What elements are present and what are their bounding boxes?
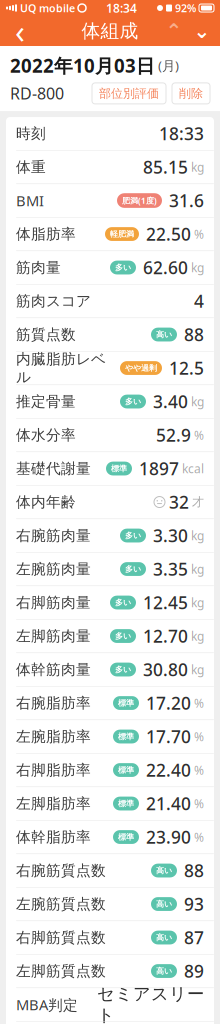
staticText: 多い — [115, 631, 131, 641]
staticText: 89 — [184, 959, 204, 982]
staticText: 高い — [156, 966, 172, 976]
staticText: 右腕筋質点数 — [16, 861, 106, 879]
staticText: 左脚筋質点数 — [16, 962, 106, 980]
button[interactable]: 前の記録 — [160, 16, 188, 46]
staticText: 内臓脂肪レベル — [16, 350, 106, 386]
staticText: 高い — [156, 330, 172, 339]
staticText: % — [194, 226, 204, 242]
staticText: 85.15 — [143, 155, 188, 178]
staticText: 基礎代謝量 — [16, 459, 91, 477]
staticText: 30.80 — [143, 658, 188, 681]
staticText: 多い — [115, 263, 131, 272]
staticText: 12.5 — [169, 356, 204, 379]
staticText: 右脚筋肉量 — [16, 593, 91, 611]
staticText: 62.60 — [143, 256, 188, 279]
staticText: 右脚筋質点数 — [16, 928, 106, 946]
staticText: 軽肥満 — [110, 229, 134, 239]
staticText: 31.6 — [169, 189, 204, 212]
staticText: ⌃ — [165, 20, 182, 42]
staticText: 3.30 — [153, 524, 188, 547]
staticText: 高い — [156, 866, 172, 875]
staticText: 体水分率 — [16, 426, 76, 444]
staticText: 標準 — [118, 832, 134, 842]
staticText: 多い — [115, 598, 131, 607]
staticText: kg — [191, 394, 204, 409]
staticText: 部位別評価 — [99, 86, 159, 101]
staticText: kg — [191, 628, 204, 644]
staticText: 右腕脂肪率 — [16, 694, 91, 712]
staticText: 体脂肪率 — [16, 225, 76, 243]
staticText: 88 — [184, 859, 204, 882]
staticText: 体重 — [16, 158, 46, 176]
staticText: kg — [191, 595, 204, 610]
button[interactable]: 戻る — [4, 16, 36, 46]
staticText: kg — [191, 528, 204, 543]
staticText: 時刻 — [16, 124, 46, 142]
staticText: 左脚筋肉量 — [16, 627, 91, 645]
staticText: kg — [191, 561, 204, 577]
staticText: 4 — [194, 289, 204, 312]
staticText: % — [194, 829, 204, 845]
staticText: 22.40 — [146, 758, 191, 781]
staticText: 多い — [125, 531, 141, 540]
staticText: kg — [191, 159, 204, 175]
staticText: 体内年齢 — [16, 493, 76, 511]
button[interactable]: 部位別評価 — [92, 83, 166, 104]
staticText: 87 — [184, 926, 204, 949]
staticText: 18:33 — [159, 122, 204, 145]
staticText: 3.40 — [153, 390, 188, 413]
staticText: 右腕筋肉量 — [16, 526, 91, 544]
staticText: 筋肉スコア — [16, 292, 91, 310]
staticText: 筋肉量 — [16, 258, 61, 276]
staticText: やや過剰 — [125, 363, 157, 373]
staticText: 多い — [125, 397, 141, 406]
staticText: 高い — [156, 933, 172, 942]
staticText: % — [194, 729, 204, 744]
staticText: % — [194, 762, 204, 778]
staticText: ⌄ — [193, 20, 210, 42]
staticText: 3.35 — [153, 557, 188, 580]
staticText: 右脚脂肪率 — [16, 761, 91, 779]
staticText: RD-800 — [10, 83, 64, 104]
staticText: 23.90 — [146, 825, 191, 848]
staticText: 削除 — [179, 86, 203, 101]
staticText: UQ mobile — [20, 1, 75, 15]
staticText: 18:34 — [106, 0, 137, 16]
staticText: 多い — [125, 564, 141, 574]
staticText: 左腕脂肪率 — [16, 727, 91, 745]
staticText: 推定骨量 — [16, 392, 76, 410]
staticText: % — [194, 427, 204, 443]
staticText: kcal — [182, 461, 204, 476]
staticText: kg — [191, 260, 204, 275]
staticText: 92% — [175, 1, 196, 15]
staticText: 17.20 — [146, 691, 191, 714]
staticText: 体幹脂肪率 — [16, 828, 91, 846]
staticText: 17.70 — [146, 725, 191, 748]
staticText: 左腕筋肉量 — [16, 560, 91, 578]
staticText: 21.40 — [146, 792, 191, 815]
staticText: MBA判定 — [16, 995, 78, 1014]
staticText: 32 — [169, 490, 189, 513]
staticText: 88 — [184, 323, 204, 346]
staticText: セミアスリート — [97, 983, 204, 1024]
staticText: kg — [191, 662, 204, 677]
staticText: 93 — [184, 892, 204, 915]
staticText: 12.70 — [143, 624, 188, 647]
staticText: 肥満(1度) — [122, 195, 157, 206]
staticText: 標準 — [118, 698, 134, 708]
staticText: 左脚脂肪率 — [16, 794, 91, 812]
staticText: 筋質点数 — [16, 325, 76, 343]
staticText: 体幹筋肉量 — [16, 660, 91, 678]
staticText: 22.50 — [146, 222, 191, 245]
button[interactable]: 次の記録 — [188, 16, 216, 46]
staticText: 標準 — [118, 799, 134, 808]
staticText: 2022年10月03日 — [10, 53, 155, 78]
button[interactable]: 削除 — [172, 83, 210, 104]
staticText: 1897 — [139, 457, 179, 480]
staticText: 標準 — [111, 464, 127, 473]
staticText: BMI — [16, 191, 44, 210]
staticText: 才 — [192, 495, 204, 509]
staticText: % — [194, 796, 204, 811]
staticText: 左腕筋質点数 — [16, 895, 106, 913]
staticText: 高い — [156, 899, 172, 909]
